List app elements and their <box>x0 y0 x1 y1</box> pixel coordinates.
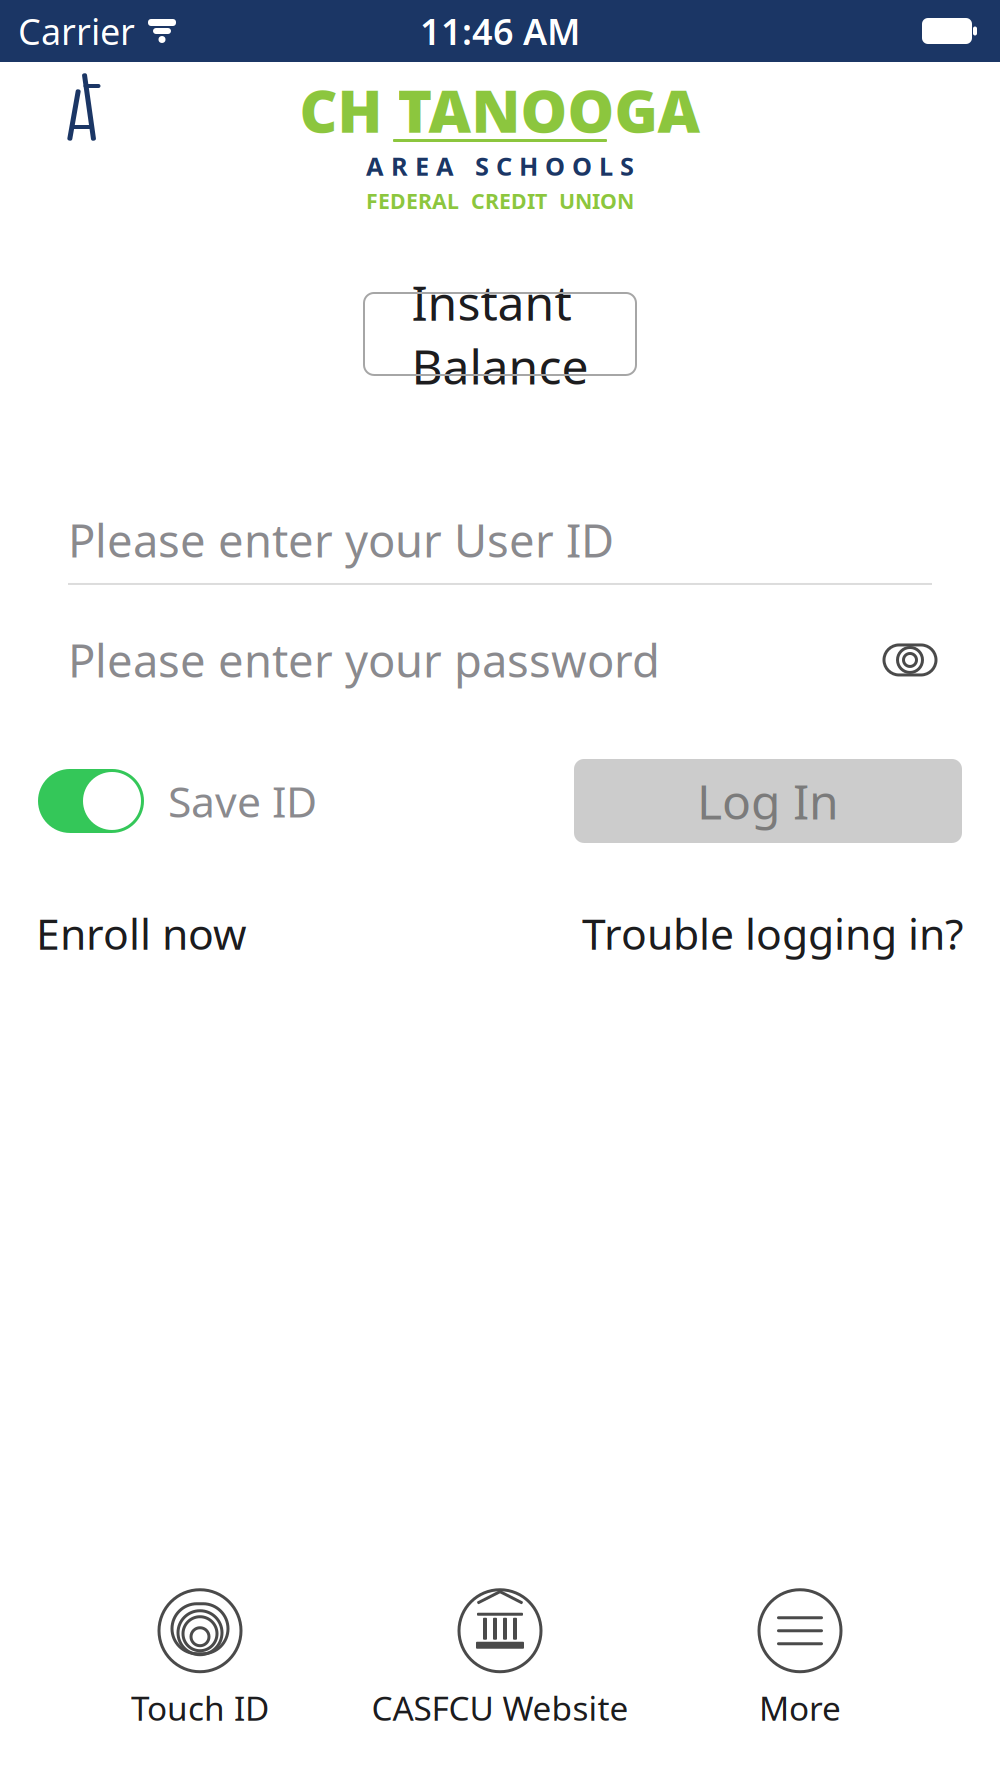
staticText: CASFCU Website <box>371 1686 628 1730</box>
staticText: More <box>759 1686 841 1730</box>
staticText: Please enter your password <box>68 630 660 690</box>
button[interactable]: Instant Balance <box>364 293 636 375</box>
staticText: Trouble logging in? <box>582 905 964 962</box>
staticText: Touch ID <box>131 1686 269 1730</box>
staticText: Carrier <box>18 7 135 55</box>
button[interactable]: Please enter your User ID <box>68 497 932 583</box>
button[interactable]: Save ID <box>38 769 317 833</box>
button[interactable]: Please enter your password <box>0 617 1000 703</box>
button[interactable]: Log In <box>574 759 962 843</box>
staticText <box>382 71 397 149</box>
button[interactable]: Touch ID <box>50 1590 350 1730</box>
staticText: CH <box>299 71 382 149</box>
staticText: 11:46 AM <box>420 7 580 55</box>
staticText: Log In <box>697 769 839 833</box>
staticText: Instant Balance <box>411 270 588 398</box>
button[interactable]: More <box>650 1590 950 1730</box>
button[interactable]: CASFCU Website <box>350 1590 650 1730</box>
button[interactable]: Enroll now <box>36 905 247 962</box>
button[interactable]: Trouble logging in? <box>582 905 964 962</box>
staticText: TANOOGA <box>397 71 700 149</box>
staticText: Save ID <box>168 773 317 829</box>
staticText: A R E A S C H O O L S <box>366 149 634 183</box>
staticText: Enroll now <box>36 905 247 962</box>
staticText: FEDERAL CREDIT UNION <box>366 187 634 215</box>
staticText: Please enter your User ID <box>68 510 614 570</box>
